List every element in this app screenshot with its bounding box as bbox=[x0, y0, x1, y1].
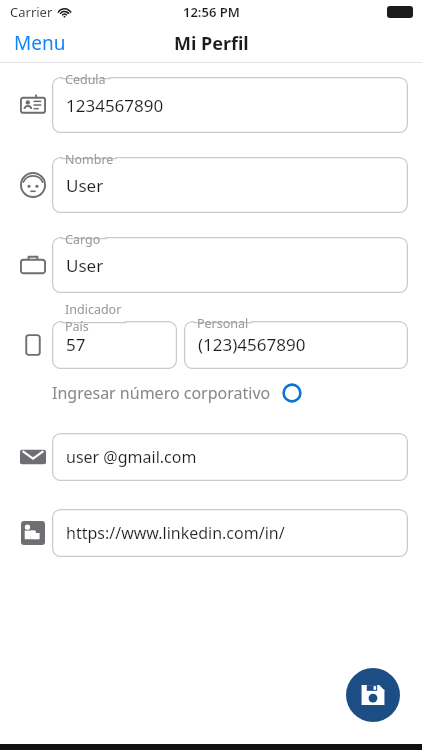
staticText: 1234567890 bbox=[66, 94, 164, 117]
button[interactable]: Guardar bbox=[346, 668, 400, 722]
staticText: Nombre bbox=[65, 151, 114, 168]
staticText: (123)4567890 bbox=[198, 333, 306, 356]
button[interactable]: Personal bbox=[184, 321, 408, 369]
button[interactable]: Cedula bbox=[52, 77, 408, 133]
staticText: Mi Perfil bbox=[174, 31, 249, 56]
staticText: Ingresar número corporativo bbox=[52, 382, 271, 404]
button[interactable]: user @gmail.com bbox=[52, 433, 408, 481]
staticText: 12:56 PM bbox=[183, 3, 240, 21]
button[interactable]: Nombre bbox=[52, 157, 408, 213]
staticText: Personal bbox=[197, 315, 249, 332]
button[interactable]: https://www.linkedin.com/in/ bbox=[52, 509, 408, 557]
button[interactable]: Indicador bbox=[52, 321, 177, 369]
staticText: User bbox=[66, 174, 104, 197]
staticText: Menu bbox=[14, 30, 66, 56]
button[interactable]: Ingresar número corporativo bbox=[50, 379, 304, 407]
staticText: https://www.linkedin.com/in/ bbox=[66, 522, 285, 544]
staticText: 57 bbox=[66, 333, 86, 356]
staticText: Carrier bbox=[10, 3, 53, 21]
staticText: Cargo bbox=[65, 231, 101, 248]
staticText: Indicador bbox=[65, 301, 122, 318]
staticText: user @gmail.com bbox=[66, 446, 197, 468]
button[interactable]: Cargo bbox=[52, 237, 408, 293]
staticText: Cedula bbox=[65, 71, 106, 88]
button[interactable]: Menu bbox=[0, 25, 80, 61]
staticText: User bbox=[66, 254, 104, 277]
staticText: País bbox=[65, 318, 89, 335]
